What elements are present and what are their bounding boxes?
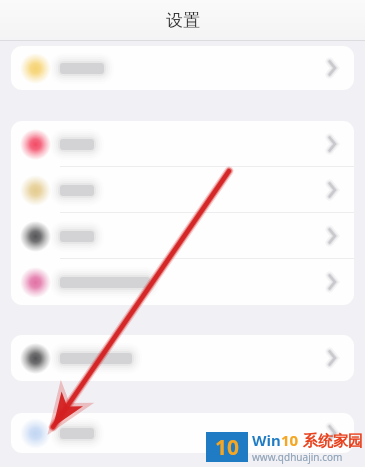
staticText: 设置 [166,10,200,31]
staticText: Win [252,430,281,450]
staticText: 系统家园 [299,430,363,450]
button[interactable] [11,413,354,453]
button[interactable] [11,335,354,381]
staticText: 10 [281,430,299,450]
button[interactable] [11,121,354,167]
staticText: 10 [215,433,240,462]
staticText: www.qdhuajin.com [252,450,343,464]
button[interactable] [11,259,354,305]
button[interactable] [11,167,354,213]
button[interactable] [11,213,354,259]
button[interactable] [11,46,354,90]
